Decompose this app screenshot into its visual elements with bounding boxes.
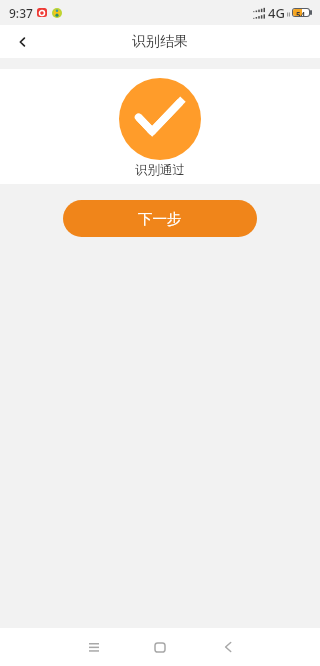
button[interactable]: Back [208,628,248,666]
staticText: 识别结果 [132,33,188,51]
button[interactable]: 下一步 [63,200,257,237]
staticText: 识别通过 [135,162,185,178]
button[interactable]: Home [140,628,180,666]
staticText: 54 [296,9,306,16]
staticText: 下一步 [138,210,182,228]
staticText: 9:37 [9,5,33,21]
button[interactable]: Recent apps [74,628,114,666]
button[interactable]: Back [0,25,44,58]
staticText: 4G [268,4,285,22]
